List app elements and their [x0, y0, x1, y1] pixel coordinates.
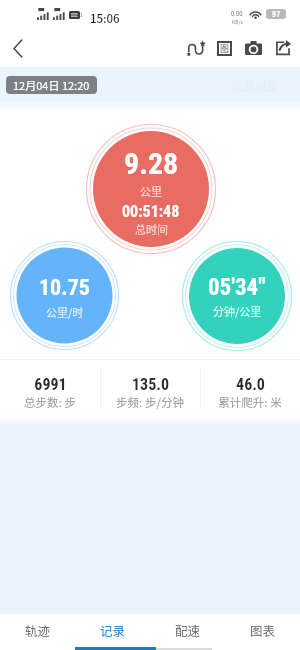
staticText: 图表	[250, 621, 276, 639]
staticText: 05'34"	[208, 274, 266, 301]
button[interactable]: 135.0	[100, 367, 200, 411]
button[interactable]: 12月04日 12:20	[6, 76, 97, 94]
staticText: 分钟/公里	[213, 303, 262, 319]
staticText: KB/s	[232, 18, 243, 25]
staticText: 轨迹	[25, 621, 51, 639]
button[interactable]: 配速	[150, 614, 225, 646]
staticText: 6991	[34, 375, 67, 394]
staticText: 创意跑步	[231, 77, 280, 94]
button[interactable]: Map	[210, 30, 239, 66]
button[interactable]: Back	[0, 30, 36, 66]
staticText: 9.28	[124, 146, 179, 181]
button[interactable]: 9.28	[86, 124, 216, 254]
button[interactable]: 6991	[0, 367, 100, 411]
button[interactable]: 轨迹	[0, 614, 75, 646]
staticText: 图	[220, 42, 230, 55]
staticText: 累计爬升: 米	[218, 394, 282, 411]
staticText: 总步数: 步	[24, 394, 76, 411]
staticText: 1	[80, 11, 83, 18]
button[interactable]: 10.75	[10, 241, 119, 350]
staticText: 总时间	[135, 221, 168, 237]
staticText: 公里/时	[46, 304, 84, 320]
staticText: 步频: 步/分钟	[116, 394, 184, 411]
staticText: 97	[272, 9, 281, 19]
button[interactable]: 05'34"	[182, 241, 292, 351]
staticText: 12月04日 12:20	[13, 77, 90, 93]
button[interactable]: Route	[181, 30, 210, 66]
staticText: 00:51:48	[122, 202, 180, 221]
staticText: 15:06	[90, 10, 120, 27]
staticText: 公里	[140, 183, 162, 199]
button[interactable]: 图表	[225, 614, 300, 646]
button[interactable]: Share	[268, 30, 297, 66]
staticText: 135.0	[132, 375, 169, 394]
button[interactable]: 46.0	[200, 367, 300, 411]
staticText: 0.00	[231, 9, 243, 18]
staticText: 配速	[175, 621, 201, 639]
button[interactable]: 记录	[75, 614, 150, 646]
staticText: 10.75	[39, 275, 90, 301]
button[interactable]: Camera	[239, 30, 268, 66]
staticText: 46.0	[236, 375, 265, 394]
staticText: 记录	[100, 621, 126, 639]
